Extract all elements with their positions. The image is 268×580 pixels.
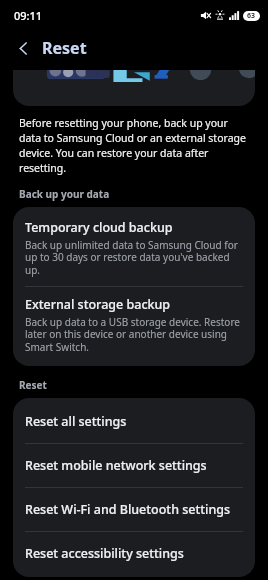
button[interactable]: Reset Wi-Fi and Bluetooth settings	[19, 488, 249, 531]
staticText: Reset accessibility settings	[25, 545, 184, 562]
button[interactable]: Reset all settings	[19, 400, 249, 443]
staticText: Before resetting your phone, back up you…	[19, 116, 248, 175]
staticText: Reset	[42, 37, 87, 59]
button[interactable]: Reset mobile network settings	[19, 444, 249, 487]
staticText: Temporary cloud backup	[25, 219, 173, 236]
staticText: Reset mobile network settings	[25, 457, 207, 474]
staticText: Back up unlimited data to Samsung Cloud …	[25, 238, 243, 277]
button[interactable]: Back	[8, 33, 38, 63]
staticText: External storage backup	[25, 296, 171, 313]
button[interactable]: Temporary cloud backup	[19, 210, 249, 286]
staticText: Back up your data	[19, 187, 110, 201]
staticText: Reset all settings	[25, 413, 127, 430]
staticText: 09:11	[14, 8, 43, 23]
button[interactable]: Reset accessibility settings	[19, 532, 249, 575]
staticText: 63	[247, 11, 256, 21]
staticText: Back up data to a USB storage device. Re…	[25, 315, 243, 354]
staticText: Reset Wi-Fi and Bluetooth settings	[25, 501, 231, 518]
staticText: Reset	[19, 378, 47, 392]
button[interactable]: External storage backup	[19, 287, 249, 363]
